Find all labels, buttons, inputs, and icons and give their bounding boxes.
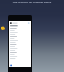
other: Pointer bbox=[1, 26, 5, 30]
button[interactable]: ADD ACCOUNT ON ANDROID PHONE bbox=[0, 1, 64, 4]
button[interactable] bbox=[9, 21, 31, 67]
